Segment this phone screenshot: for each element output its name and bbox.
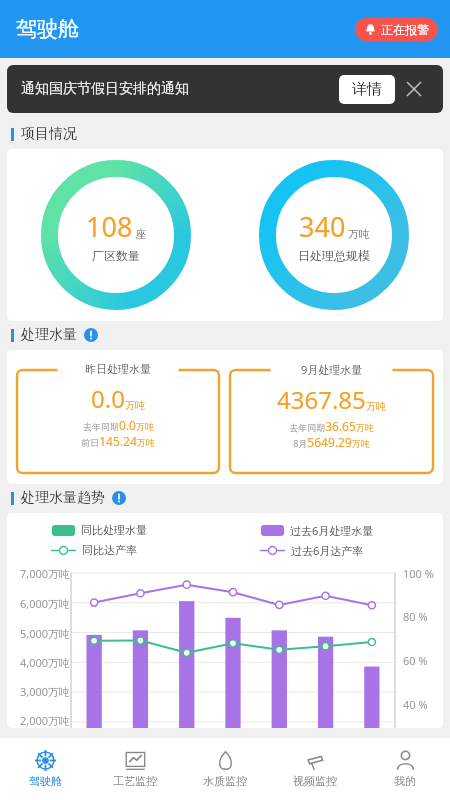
- button[interactable]: 详情: [339, 75, 395, 104]
- staticText: 340: [299, 208, 346, 245]
- staticText: 视频监控: [293, 774, 337, 788]
- staticText: 同比达产率: [82, 543, 137, 557]
- staticText: 4,000万吨: [20, 655, 71, 670]
- staticText: 处理水量趋势: [21, 489, 105, 507]
- staticText: 同比处理水量: [81, 523, 147, 537]
- staticText: 工艺监控: [113, 774, 157, 788]
- staticText: 驾驶舱: [29, 774, 62, 788]
- staticText: 4367.85: [277, 383, 366, 416]
- button[interactable]: 说明: [84, 328, 98, 342]
- staticText: 座: [135, 227, 146, 241]
- staticText: 我的: [394, 774, 416, 788]
- button[interactable]: 昨日处理水量: [17, 361, 219, 473]
- staticText: 厂区数量: [92, 248, 140, 263]
- button[interactable]: 视频监控: [270, 738, 360, 800]
- staticText: 108: [86, 208, 133, 245]
- staticText: 0.0: [91, 382, 125, 415]
- staticText: 80 %: [403, 609, 428, 624]
- staticText: 通知国庆节假日安排的通知: [21, 80, 339, 98]
- staticText: 100 %: [403, 566, 434, 581]
- button[interactable]: 说明: [112, 491, 126, 505]
- button[interactable]: 正在报警: [355, 18, 438, 41]
- button[interactable]: 我的: [360, 738, 450, 800]
- staticText: 3,000万吨: [20, 684, 71, 699]
- button[interactable]: 水质监控: [180, 738, 270, 800]
- staticText: 日处理总规模: [298, 248, 370, 263]
- staticText: 8月5649.29万吨: [293, 434, 370, 450]
- button[interactable]: 驾驶舱: [0, 738, 90, 800]
- staticText: 详情: [352, 80, 382, 99]
- staticText: 万吨: [348, 227, 370, 241]
- staticText: 40 %: [403, 697, 428, 712]
- staticText: 7,000万吨: [20, 566, 71, 581]
- button[interactable]: 工艺监控: [90, 738, 180, 800]
- staticText: 6,000万吨: [20, 596, 71, 611]
- staticText: 2,000万吨: [20, 713, 71, 728]
- staticText: 驾驶舱: [16, 16, 79, 42]
- staticText: 5,000万吨: [20, 626, 71, 641]
- staticText: 水质监控: [203, 774, 247, 788]
- staticText: 昨日处理水量: [85, 362, 151, 376]
- button[interactable]: 9月处理水量: [230, 361, 433, 473]
- staticText: 去年同期36.65万吨: [289, 418, 374, 434]
- staticText: 9月处理水量: [301, 362, 363, 377]
- button[interactable]: 关闭: [399, 74, 429, 104]
- staticText: 去年同期0.0万吨: [83, 417, 154, 433]
- staticText: 60 %: [403, 653, 428, 668]
- staticText: 万吨: [125, 399, 145, 412]
- staticText: 万吨: [366, 400, 386, 413]
- staticText: 正在报警: [381, 22, 429, 37]
- staticText: 过去6月达产率: [291, 543, 364, 558]
- staticText: 过去6月处理水量: [290, 523, 374, 538]
- staticText: 前日145.24万吨: [81, 433, 155, 449]
- staticText: 处理水量: [21, 326, 77, 344]
- staticText: 项目情况: [21, 125, 77, 143]
